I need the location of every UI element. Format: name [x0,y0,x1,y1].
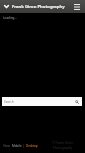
staticText: Frank Giron Photography [12,4,65,10]
staticText: Loading... [3,16,17,20]
button[interactable]: Search [2,97,82,106]
staticText: © Frank Giron Photography [50,141,75,150]
button[interactable]: Desktop [26,144,38,148]
button[interactable]: Expand menu [0,0,12,13]
button[interactable]: Mobile [12,144,22,148]
staticText: Search [4,100,14,104]
staticText: View: [3,144,12,148]
button[interactable]: Menu [70,0,83,13]
button[interactable]: Search [71,97,82,106]
staticText: | [22,144,26,148]
